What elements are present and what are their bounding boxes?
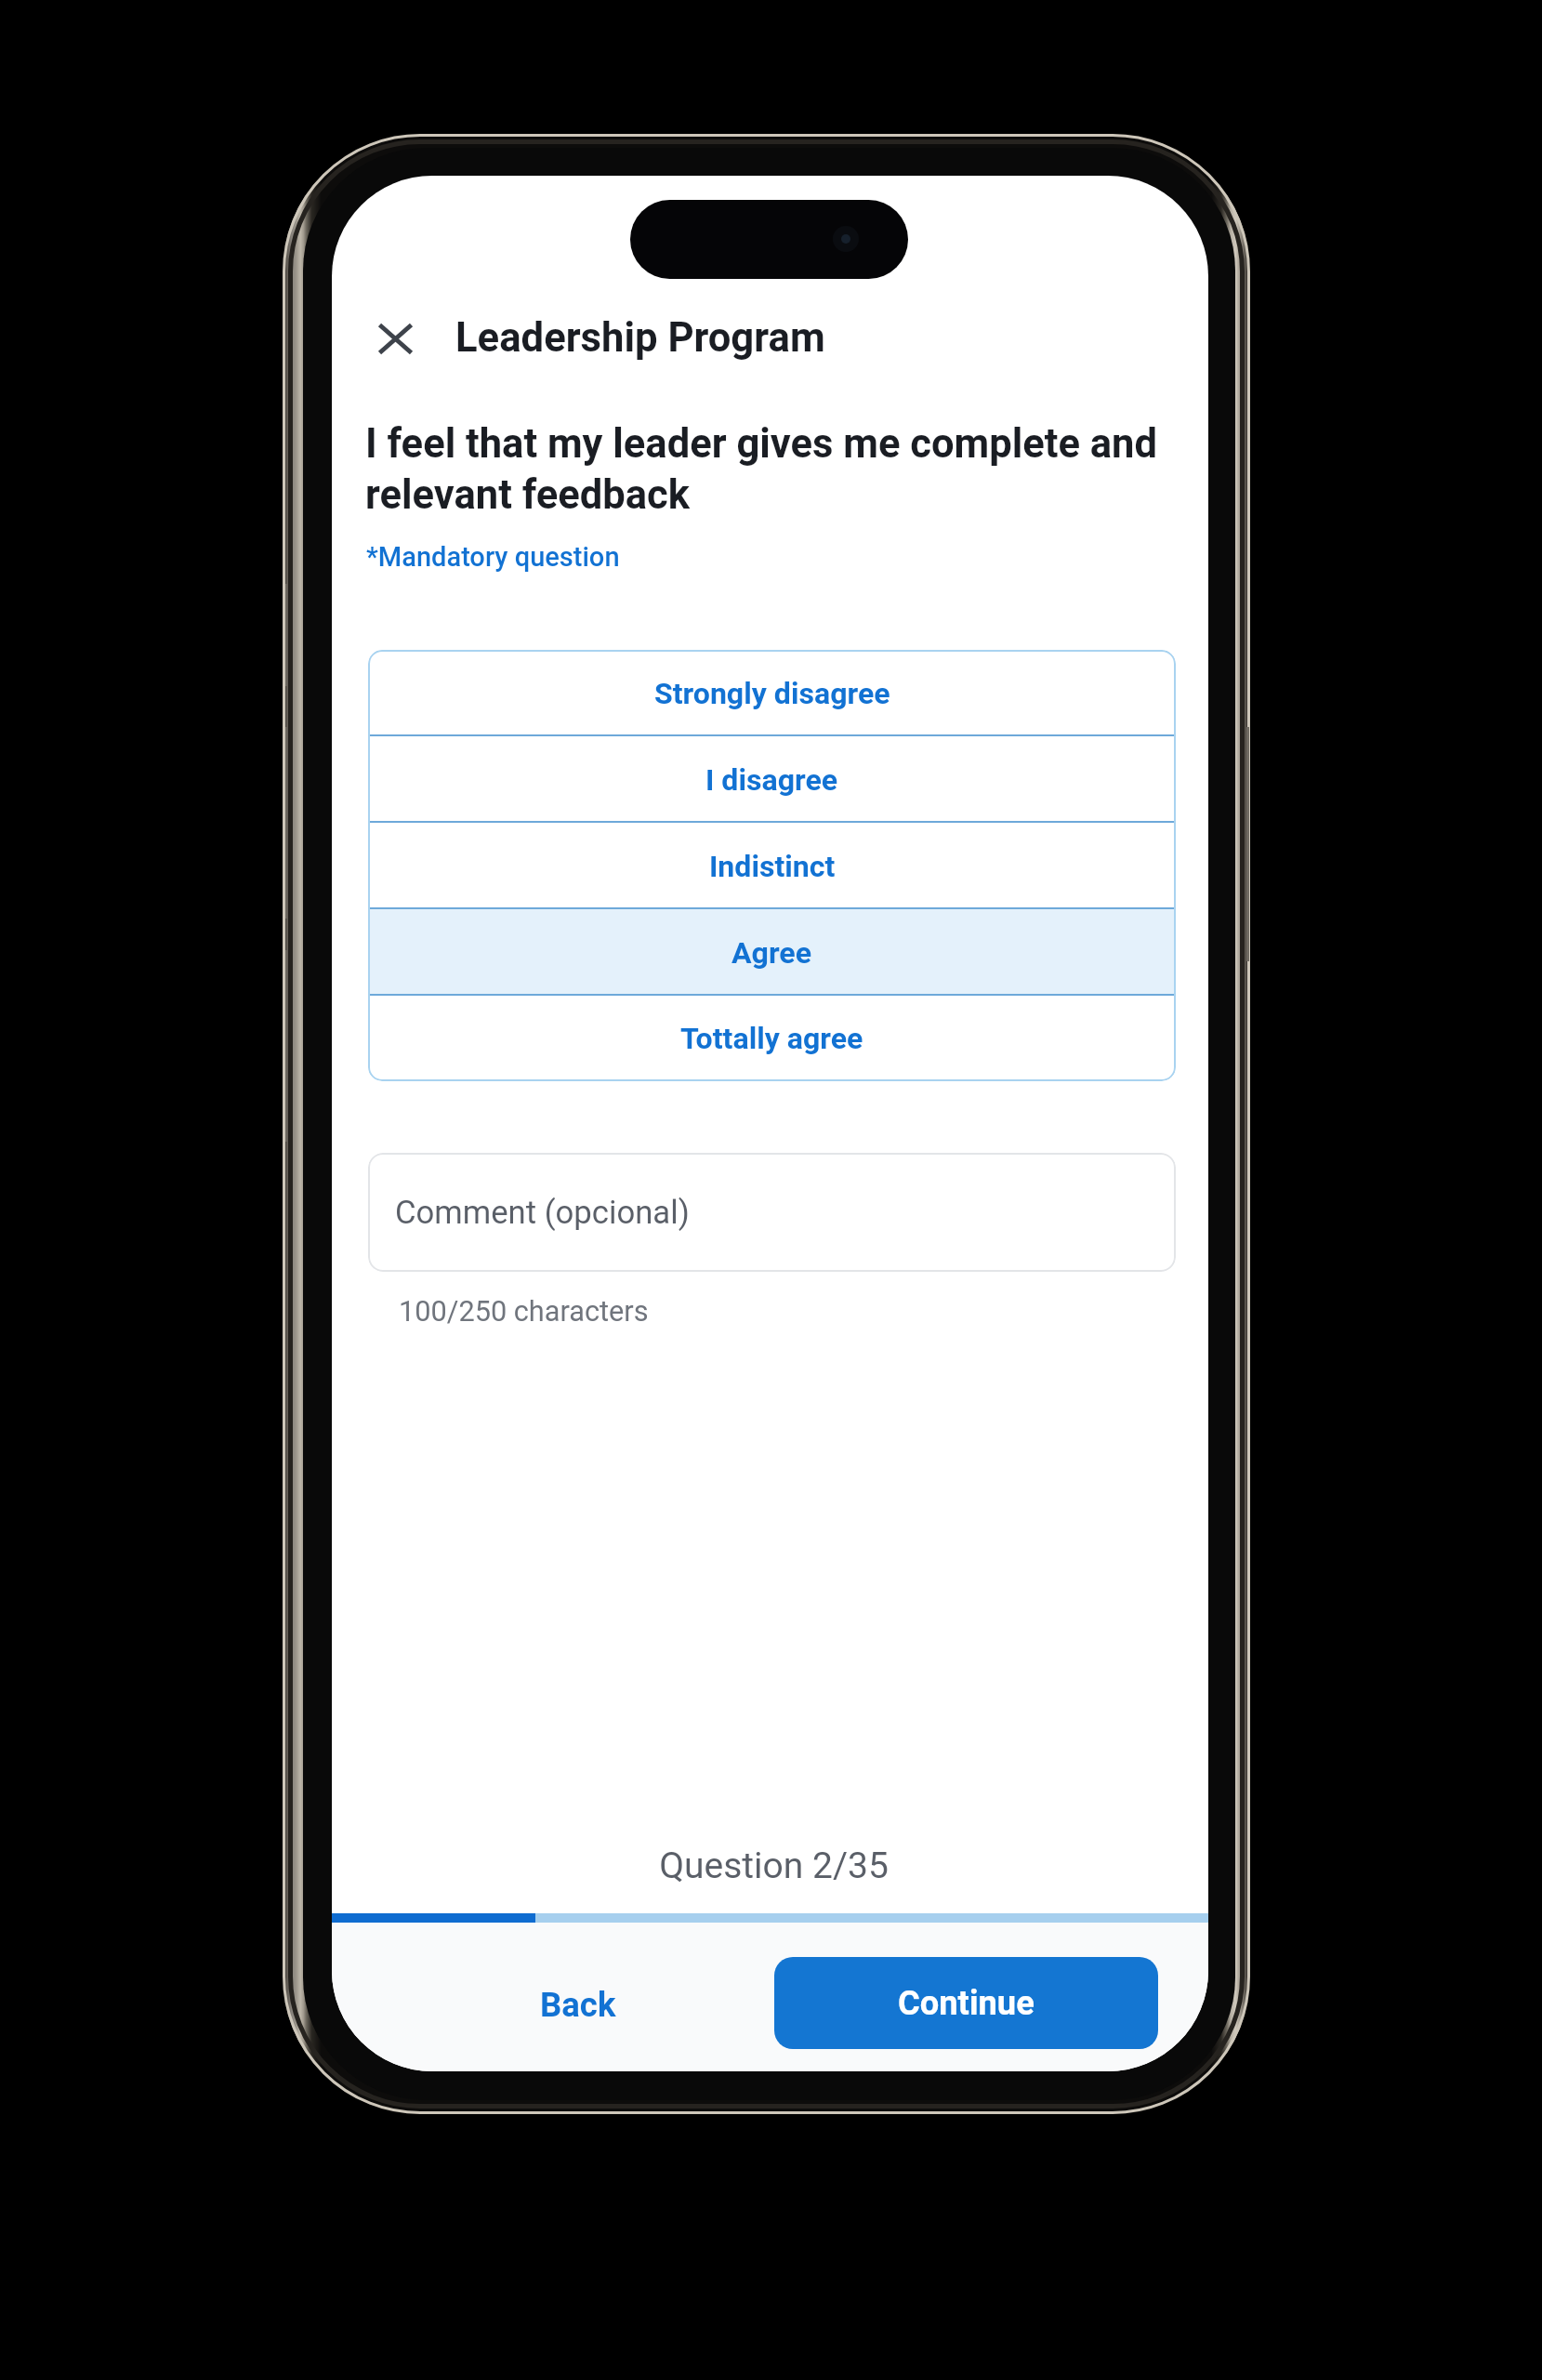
button[interactable]: Strongly disagree xyxy=(368,650,1176,736)
button[interactable]: Tottally agree xyxy=(368,996,1176,1081)
button[interactable]: Back xyxy=(493,1959,664,2051)
staticText: I feel that my leader gives me complete … xyxy=(365,420,1174,518)
staticText: Question 2/35 xyxy=(336,1844,1208,1887)
staticText: Indistinct xyxy=(709,849,836,884)
staticText: Strongly disagree xyxy=(654,676,890,711)
button[interactable]: Agree xyxy=(368,909,1176,996)
staticText: 100/250 characters xyxy=(399,1295,649,1329)
staticText: Continue xyxy=(898,1983,1035,2023)
button[interactable]: Comment (opcional) xyxy=(368,1153,1176,1272)
staticText: Leadership Program xyxy=(455,314,825,362)
button[interactable]: Continue xyxy=(774,1957,1158,2049)
button[interactable]: I disagree xyxy=(368,736,1176,823)
staticText: Agree xyxy=(731,935,812,971)
button[interactable]: Close xyxy=(349,309,442,368)
staticText: Back xyxy=(540,1985,616,2025)
staticText: I disagree xyxy=(705,762,838,798)
staticText: Tottally agree xyxy=(680,1021,863,1056)
staticText: Comment (opcional) xyxy=(395,1194,690,1232)
staticText: *Mandatory question xyxy=(366,541,620,573)
button[interactable]: Indistinct xyxy=(368,823,1176,909)
